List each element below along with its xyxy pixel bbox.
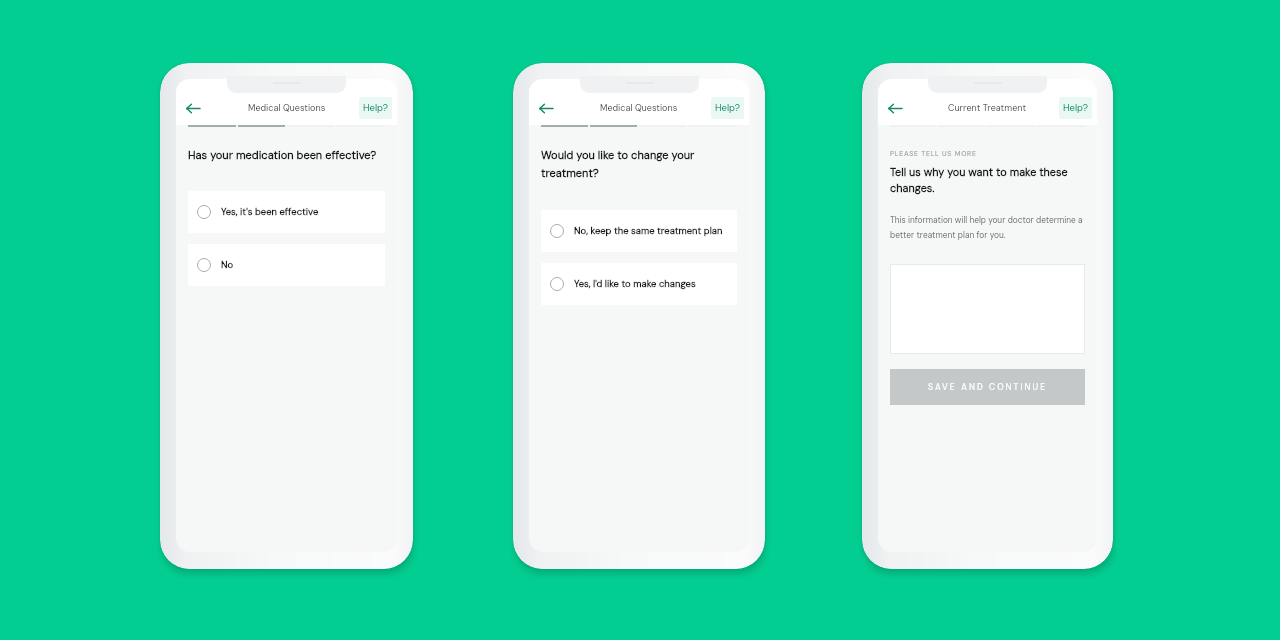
staticText: Medical Questions — [248, 102, 326, 114]
button[interactable]: No, keep the same treatment plan — [541, 210, 737, 252]
button[interactable]: Back — [180, 95, 206, 121]
staticText: This information will help your doctor d… — [890, 215, 1085, 241]
staticText: SAVE AND CONTINUE — [928, 382, 1048, 393]
button[interactable]: No — [188, 244, 385, 286]
staticText: No — [221, 259, 234, 271]
button[interactable]: Help? — [359, 97, 392, 119]
staticText: Tell us why you want to make these chang… — [890, 165, 1079, 196]
staticText: Has your medication been effective? — [188, 148, 377, 162]
staticText: Yes, it's been effective — [221, 206, 319, 218]
staticText: Help? — [1063, 102, 1088, 114]
button[interactable]: Help? — [711, 97, 744, 119]
button[interactable]: Yes, it's been effective — [188, 191, 385, 233]
staticText: No, keep the same treatment plan — [574, 225, 723, 237]
button[interactable]: Help? — [1059, 97, 1092, 119]
button[interactable]: Yes, I'd like to make changes — [541, 263, 737, 305]
staticText: Help? — [363, 102, 388, 114]
staticText: Would you like to change your treatment? — [541, 148, 741, 181]
staticText: Yes, I'd like to make changes — [574, 278, 696, 290]
staticText: Help? — [715, 102, 740, 114]
button[interactable]: Back — [533, 95, 559, 121]
staticText: PLEASE TELL US MORE — [890, 149, 977, 158]
button[interactable]: SAVE AND CONTINUE — [890, 369, 1085, 405]
staticText: Current Treatment — [948, 102, 1027, 114]
staticText: Medical Questions — [600, 102, 678, 114]
button[interactable]: Back — [882, 95, 908, 121]
